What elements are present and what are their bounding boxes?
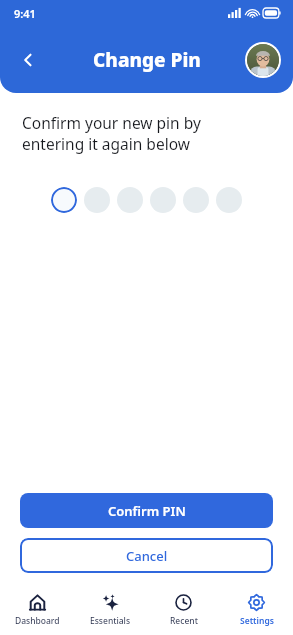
button[interactable]: Cancel: [20, 538, 273, 573]
staticText: Confirm your new pin by entering it agai…: [22, 112, 201, 155]
staticText: Recent: [170, 615, 198, 627]
button[interactable]: Settings: [220, 585, 293, 635]
staticText: Dashboard: [15, 615, 60, 627]
button[interactable]: Profile: [245, 42, 281, 78]
staticText: 9:41: [14, 6, 36, 21]
staticText: Cancel: [126, 547, 168, 565]
button[interactable]: Confirm PIN: [20, 493, 273, 528]
staticText: Confirm PIN: [108, 502, 186, 520]
button[interactable]: Recent: [147, 585, 220, 635]
button[interactable]: Dashboard: [0, 585, 74, 635]
staticText: Change Pin: [93, 47, 201, 73]
staticText: Settings: [240, 615, 274, 627]
button[interactable]: Essentials: [74, 585, 147, 635]
staticText: Essentials: [90, 615, 131, 627]
button[interactable]: Back: [8, 40, 48, 80]
